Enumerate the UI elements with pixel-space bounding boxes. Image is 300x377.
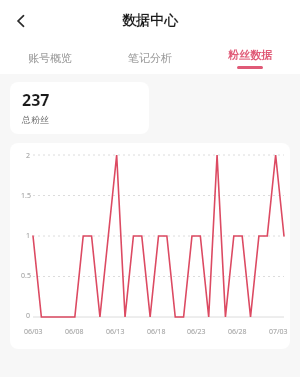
staticText: 1.5 [21,191,31,201]
staticText: 粉丝数据 [228,48,272,62]
staticText: 06/03 [24,327,43,337]
staticText: 1 [26,231,31,241]
staticText: 笔记分析 [128,51,172,65]
button[interactable]: 笔记分析 [100,42,200,74]
staticText: 0.5 [21,271,31,281]
staticText: 0 [26,311,31,321]
staticText: 06/08 [65,327,84,337]
staticText: 06/28 [228,327,247,337]
staticText: 237 [22,89,50,111]
button[interactable]: 账号概览 [0,42,100,74]
staticText: 07/03 [269,327,288,337]
staticText: 总粉丝 [22,114,49,125]
staticText: 数据中心 [122,12,178,30]
staticText: 06/23 [187,327,206,337]
staticText: 账号概览 [28,51,72,65]
staticText: 2 [26,151,31,161]
button[interactable]: Back [4,4,38,38]
staticText: 06/13 [106,327,125,337]
staticText: 06/18 [147,327,166,337]
button[interactable]: 粉丝数据 [200,42,300,74]
button[interactable]: 237 [10,82,149,134]
